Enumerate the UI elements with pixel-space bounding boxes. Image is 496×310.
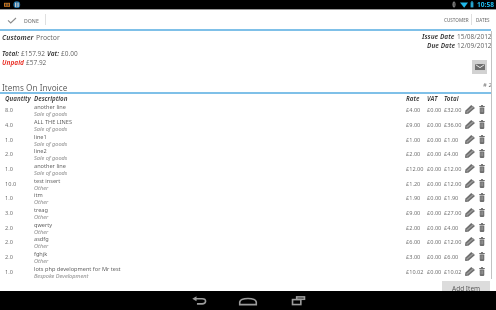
staticText: £4.00: [444, 150, 459, 158]
button[interactable]: Delete item: [475, 118, 488, 130]
staticText: £0.00: [427, 121, 442, 129]
button[interactable]: Email invoice: [472, 60, 487, 74]
button[interactable]: 2.0: [0, 146, 496, 160]
staticText: £0.00: [427, 209, 442, 217]
staticText: £32.00: [444, 106, 462, 114]
staticText: £4.00: [444, 224, 459, 232]
staticText: DATES: [476, 17, 490, 23]
button[interactable]: Home: [231, 291, 265, 310]
staticText: 1.0: [5, 268, 13, 276]
button[interactable]: Edit item: [462, 221, 477, 233]
button[interactable]: Edit item: [462, 162, 477, 174]
button[interactable]: 2.0: [0, 249, 496, 263]
button[interactable]: Delete item: [475, 103, 488, 115]
button[interactable]: 1.0: [0, 264, 496, 278]
button[interactable]: Edit item: [462, 118, 477, 130]
staticText: Vat:: [47, 49, 61, 58]
button[interactable]: Delete item: [475, 206, 488, 218]
button[interactable]: Delete item: [475, 162, 488, 174]
staticText: 2.0: [5, 238, 13, 246]
staticText: £2.00: [406, 150, 421, 158]
button[interactable]: Delete item: [475, 191, 488, 203]
button[interactable]: Delete item: [475, 250, 488, 262]
button[interactable]: Edit item: [462, 235, 477, 247]
staticText: £0.00: [427, 268, 442, 276]
staticText: £1.00: [406, 136, 421, 144]
button[interactable]: 1.0: [0, 190, 496, 204]
button[interactable]: Back: [182, 291, 216, 310]
staticText: Unpaid: [2, 58, 26, 67]
staticText: 1.0: [5, 136, 13, 144]
button[interactable]: Delete item: [475, 235, 488, 247]
staticText: 8.0: [5, 106, 13, 114]
staticText: asdfg: [34, 235, 49, 243]
button[interactable]: Delete item: [475, 147, 488, 159]
staticText: Total: [444, 94, 459, 102]
staticText: Rate: [406, 94, 420, 102]
button[interactable]: Edit item: [462, 265, 477, 277]
button[interactable]: Delete item: [475, 133, 488, 145]
button[interactable]: CUSTOMER: [440, 13, 473, 27]
staticText: 12/09/2012: [457, 41, 492, 50]
button[interactable]: Recent apps: [281, 291, 315, 310]
staticText: £0.00: [427, 136, 442, 144]
button[interactable]: Edit item: [462, 133, 477, 145]
staticText: £0.00: [427, 253, 442, 261]
button[interactable]: Edit item: [462, 250, 477, 262]
staticText: CUSTOMER: [444, 17, 469, 23]
staticText: DONE: [24, 17, 39, 24]
staticText: itm: [34, 191, 43, 199]
staticText: qwerty: [34, 221, 53, 229]
staticText: £1.90: [444, 194, 459, 202]
staticText: £0.00: [427, 238, 442, 246]
staticText: Items On Invoice: [2, 82, 68, 93]
staticText: £157.92: [21, 49, 47, 58]
button[interactable]: 10.0: [0, 176, 496, 190]
staticText: Proctor: [36, 33, 60, 42]
staticText: Other: [34, 228, 49, 236]
button[interactable]: Edit item: [462, 191, 477, 203]
staticText: £9.00: [406, 209, 421, 217]
staticText: £4.00: [406, 106, 421, 114]
staticText: £9.00: [406, 121, 421, 129]
staticText: 1.0: [5, 194, 13, 202]
button[interactable]: Delete item: [475, 177, 488, 189]
staticText: 4.0: [5, 121, 13, 129]
staticText: Issue Date: [422, 32, 457, 41]
staticText: Other: [34, 242, 49, 250]
staticText: 2.0: [5, 253, 13, 261]
staticText: Due Date: [427, 41, 457, 50]
button[interactable]: Edit item: [462, 206, 477, 218]
button[interactable]: Delete item: [475, 265, 488, 277]
staticText: £0.00: [427, 224, 442, 232]
staticText: Sale of goods: [34, 154, 68, 162]
button[interactable]: 4.0: [0, 117, 496, 131]
staticText: 1.0: [5, 165, 13, 173]
staticText: £6.00: [444, 253, 459, 261]
button[interactable]: Add Item: [442, 281, 490, 295]
staticText: £12.00: [444, 180, 462, 188]
staticText: £0.00: [427, 150, 442, 158]
staticText: lots php development for Mr test: [34, 265, 121, 273]
staticText: Bespoke Development: [34, 272, 89, 280]
button[interactable]: Edit item: [462, 103, 477, 115]
staticText: £0.00: [427, 165, 442, 173]
button[interactable]: Delete item: [475, 221, 488, 233]
button[interactable]: 1.0: [0, 132, 496, 146]
button[interactable]: 8.0: [0, 102, 496, 116]
button[interactable]: DATES: [472, 13, 494, 27]
staticText: Add Item: [452, 284, 481, 293]
button[interactable]: 1.0: [0, 161, 496, 175]
button[interactable]: DONE: [0, 13, 49, 27]
staticText: Sale of goods: [34, 110, 68, 118]
staticText: £10.02: [406, 268, 424, 276]
staticText: Sale of goods: [34, 140, 68, 148]
button[interactable]: Edit item: [462, 147, 477, 159]
staticText: £1.20: [406, 180, 421, 188]
button[interactable]: 2.0: [0, 234, 496, 248]
button[interactable]: 3.0: [0, 205, 496, 219]
staticText: treag: [34, 206, 48, 214]
button[interactable]: Edit item: [462, 177, 477, 189]
button[interactable]: 2.0: [0, 220, 496, 234]
staticText: £6.00: [406, 238, 421, 246]
